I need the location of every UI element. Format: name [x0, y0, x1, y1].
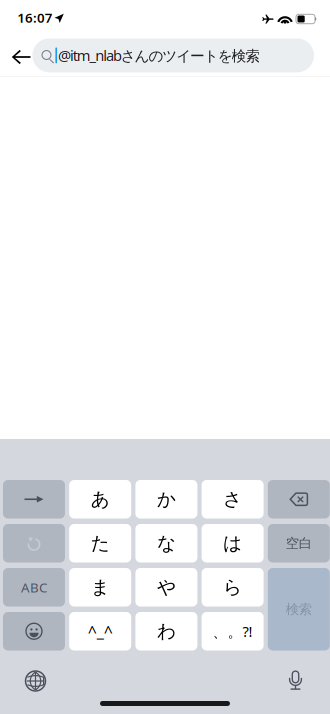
staticText: @itm_nlabさんのツイートを検索 [58, 46, 260, 65]
button[interactable]: は [202, 524, 264, 562]
button[interactable]: た [69, 524, 131, 562]
button[interactable]: 空白 [268, 524, 330, 562]
button[interactable]: @itm_nlabさんのツイートを検索 [32, 38, 314, 72]
button[interactable]: ^_^ [69, 612, 131, 650]
button[interactable] [268, 480, 330, 518]
staticText: 、。?! [213, 621, 253, 641]
staticText: わ [157, 620, 176, 643]
button[interactable]: Next keyboard [25, 671, 45, 691]
staticText: さ [223, 488, 242, 511]
button[interactable]: Back [2, 38, 38, 74]
staticText: は [223, 532, 242, 555]
staticText: ^_^ [88, 621, 113, 642]
button[interactable]: な [135, 524, 197, 562]
staticText: か [157, 488, 176, 511]
button[interactable]: 、。?! [202, 612, 264, 650]
staticText: な [157, 532, 176, 555]
staticText: 検索 [286, 601, 312, 617]
button[interactable]: Dictation [288, 670, 303, 691]
button[interactable] [3, 612, 65, 650]
button[interactable] [3, 524, 65, 562]
staticText: 空白 [286, 535, 312, 551]
staticText: た [91, 532, 110, 555]
button[interactable]: あ [69, 480, 131, 518]
button[interactable]: わ [135, 612, 197, 650]
button[interactable] [3, 480, 65, 518]
staticText: ら [223, 576, 242, 599]
staticText: ABC [21, 578, 47, 596]
button[interactable]: か [135, 480, 197, 518]
staticText: あ [91, 488, 110, 511]
staticText: ま [91, 576, 110, 599]
staticText: 16:07 [17, 9, 53, 26]
button[interactable]: ま [69, 568, 131, 606]
button[interactable]: 検索 [268, 568, 330, 650]
staticText: や [157, 576, 176, 599]
button[interactable]: さ [202, 480, 264, 518]
button[interactable]: や [135, 568, 197, 606]
button[interactable]: ら [202, 568, 264, 606]
button[interactable]: ABC [3, 568, 65, 606]
